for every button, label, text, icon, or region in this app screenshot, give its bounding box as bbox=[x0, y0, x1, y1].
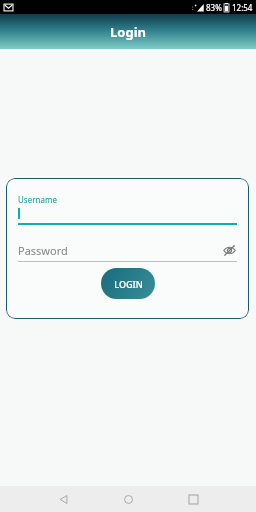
staticText: 83% bbox=[206, 2, 222, 13]
staticText: Login bbox=[110, 23, 146, 41]
button[interactable]: Home bbox=[113, 486, 143, 512]
staticText: Username bbox=[18, 194, 57, 205]
staticText: 12:54 bbox=[232, 2, 253, 13]
button[interactable]: Show password bbox=[221, 242, 237, 258]
button[interactable]: Back bbox=[48, 486, 78, 512]
button[interactable]: Password bbox=[18, 242, 237, 262]
button[interactable]: Recent apps bbox=[178, 486, 208, 512]
button[interactable]: Username bbox=[18, 194, 237, 225]
button[interactable]: LOGIN bbox=[101, 268, 155, 299]
staticText: Password bbox=[18, 243, 221, 258]
staticText: LOGIN bbox=[114, 278, 143, 290]
